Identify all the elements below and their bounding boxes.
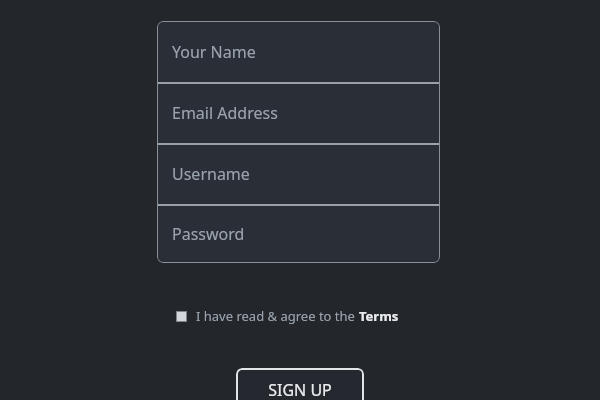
button[interactable]: Password: [157, 204, 440, 263]
staticText: Email Address: [172, 102, 278, 124]
button[interactable]: Agree to terms checkbox: [176, 303, 399, 329]
other: Agree to terms checkbox: [176, 311, 187, 322]
button[interactable]: Terms: [359, 307, 399, 325]
button[interactable]: Username: [157, 143, 440, 204]
staticText: Your Name: [172, 41, 256, 63]
staticText: I have read & agree to the: [196, 307, 359, 325]
button[interactable]: Your Name: [157, 21, 440, 82]
staticText: Password: [172, 223, 245, 245]
staticText: SIGN UP: [268, 379, 332, 400]
button[interactable]: Email Address: [157, 82, 440, 143]
staticText: Username: [172, 163, 250, 185]
button[interactable]: SIGN UP: [236, 368, 364, 400]
